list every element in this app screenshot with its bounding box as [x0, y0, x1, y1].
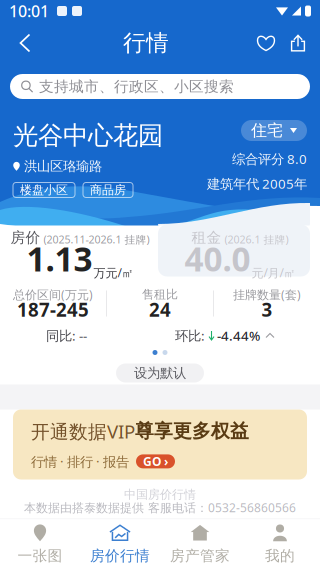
staticText: 房产管家 [170, 547, 230, 565]
staticText: 187-245 [17, 297, 89, 322]
staticText: 1.13 [26, 236, 92, 281]
staticText: 房价行情 [90, 547, 150, 565]
button[interactable]: 一张图 [0, 519, 80, 569]
staticText: 楼盘小区 [20, 183, 68, 197]
staticText: 一张图 [17, 547, 62, 565]
staticText: 同比: -- [46, 327, 87, 344]
staticText: 支持城市、行政区、小区搜索 [39, 77, 234, 95]
staticText: (2026.1 挂牌) [224, 232, 288, 246]
button[interactable]: Favorite [249, 26, 283, 60]
staticText: 租金 [191, 228, 221, 246]
button[interactable]: Share [283, 26, 313, 60]
button[interactable]: 房价行情 [80, 519, 160, 569]
staticText: GO › [143, 453, 168, 469]
staticText: 挂牌数量(套) [233, 286, 301, 302]
staticText: 尊享更多权益 [135, 420, 249, 443]
staticText: 建筑年代 2005年 [207, 175, 307, 192]
button[interactable]: Back [7, 26, 43, 60]
staticText: 洪山区珞瑜路 [24, 158, 102, 174]
staticText: 设为默认 [134, 365, 186, 381]
staticText: (2025.11-2026.1 挂牌) [43, 232, 149, 246]
staticText: 元/月/㎡ [251, 265, 295, 281]
staticText: 总价区间(万元) [13, 286, 93, 302]
button[interactable]: 住宅 [241, 120, 307, 141]
staticText: 万元/㎡ [93, 265, 133, 281]
staticText: 住宅 [251, 121, 283, 140]
staticText: 售租比 [142, 287, 178, 302]
staticText: -4.44% [217, 327, 260, 344]
button[interactable]: 房产管家 [160, 519, 240, 569]
staticText: 我的 [265, 547, 295, 565]
staticText: 24 [149, 297, 171, 322]
button[interactable]: 支持城市、行政区、小区搜索 [10, 74, 310, 99]
staticText: 光谷中心花园 [13, 120, 163, 151]
staticText: 环比: [175, 327, 205, 344]
staticText: 10:01 [9, 0, 49, 22]
staticText: 开通数据VIP [31, 419, 135, 444]
staticText: 商品房 [90, 183, 126, 197]
staticText: 房价 [10, 228, 40, 246]
staticText: 40.0 [184, 236, 250, 281]
button[interactable]: 开通数据VIP [13, 409, 307, 479]
staticText: 综合评分 8.0 [232, 150, 307, 168]
staticText: 本数据由搭泰数据提供 客服电话：0532-56860566 [24, 499, 296, 515]
staticText: 行情 [123, 29, 169, 57]
button[interactable]: 我的 [240, 519, 320, 569]
staticText: 行情 · 排行 · 报告 [31, 452, 129, 470]
staticText: 中国房价行情 [124, 487, 196, 502]
staticText: 3 [261, 297, 272, 322]
button[interactable]: 设为默认 [116, 363, 204, 382]
